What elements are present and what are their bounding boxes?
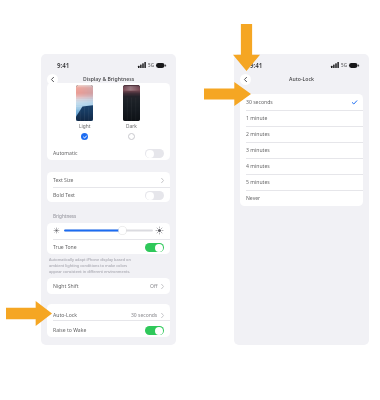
staticText: 30 seconds: [131, 312, 158, 319]
other: Step: [204, 82, 251, 106]
staticText: 9:41: [57, 61, 70, 69]
other: Step: [6, 301, 52, 326]
staticText: 1 minute: [246, 115, 268, 122]
button[interactable]: Dark: [123, 85, 140, 141]
button[interactable]: On: [145, 326, 164, 335]
button[interactable]: Bold Text: [47, 188, 170, 202]
button[interactable]: 2 minutes: [240, 126, 363, 142]
staticText: Automatically adapt iPhone display based…: [49, 257, 132, 274]
button[interactable]: Auto-Lock: [47, 304, 170, 326]
staticText: 9:41: [250, 61, 263, 69]
button[interactable]: 5 minutes: [240, 174, 363, 190]
button[interactable]: Never: [240, 190, 363, 206]
other: Step 1: [233, 24, 260, 71]
staticText: Night Shift: [53, 283, 79, 290]
button[interactable]: On: [145, 243, 164, 252]
staticText: 3 minutes: [246, 147, 270, 154]
button[interactable]: Text Size: [47, 172, 170, 188]
staticText: Never: [246, 195, 261, 202]
button[interactable]: Raise to Wake: [47, 322, 170, 337]
staticText: Dark: [126, 123, 137, 130]
staticText: Auto-Lock: [289, 76, 314, 83]
button[interactable]: Off: [145, 149, 164, 158]
staticText: Text Size: [53, 177, 74, 184]
staticText: 2 minutes: [246, 131, 270, 138]
button[interactable]: Off: [145, 191, 164, 200]
button[interactable]: 4 minutes: [240, 158, 363, 174]
button[interactable]: Automatic: [47, 145, 170, 160]
staticText: Off: [150, 283, 158, 290]
staticText: 5G: [148, 62, 154, 68]
button[interactable]: Back: [47, 74, 58, 85]
button[interactable]: 3 minutes: [240, 142, 363, 158]
staticText: Automatic: [53, 150, 78, 157]
staticText: Bold Text: [53, 192, 75, 199]
staticText: 5G: [341, 62, 347, 68]
button[interactable]: 30 seconds: [240, 94, 363, 110]
staticText: 30 seconds: [246, 99, 273, 106]
staticText: True Tone: [53, 244, 77, 251]
staticText: Light: [79, 123, 91, 130]
button[interactable]: 1 minute: [240, 110, 363, 126]
staticText: Auto-Lock: [53, 312, 77, 319]
staticText: Brightness: [53, 213, 77, 219]
staticText: Display & Brightness: [83, 76, 135, 83]
button[interactable]: Back: [240, 74, 251, 85]
staticText: 4 minutes: [246, 163, 270, 170]
button[interactable]: Night Shift: [47, 278, 170, 294]
button[interactable]: True Tone: [47, 239, 170, 254]
staticText: Raise to Wake: [53, 327, 87, 334]
button[interactable]: Light: [76, 85, 93, 141]
staticText: 5 minutes: [246, 179, 270, 186]
